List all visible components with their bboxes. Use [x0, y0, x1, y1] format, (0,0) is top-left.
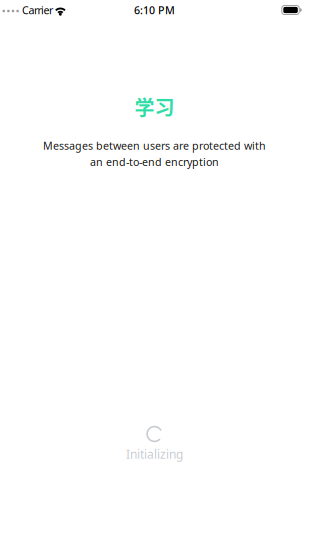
staticText: 6:10 PM [134, 3, 175, 17]
staticText: Carrier [22, 3, 53, 17]
staticText: 学习 [134, 92, 174, 121]
staticText: an end-to-end encryption [90, 155, 219, 169]
staticText: Initializing [126, 446, 183, 462]
staticText: Messages between users are protected wit… [43, 138, 266, 153]
